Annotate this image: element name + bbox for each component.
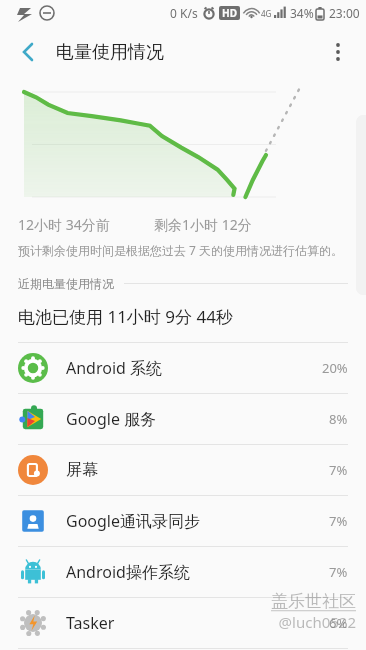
staticText: @luch0522 [278, 612, 356, 632]
staticText: 0 K/s [170, 5, 198, 21]
staticText: 20% [322, 359, 348, 377]
staticText: 电量使用情况 [56, 41, 164, 64]
staticText: 剩余1小时 12分 [154, 215, 252, 234]
staticText: Tasker [66, 612, 115, 634]
button[interactable]: Android 系统 [0, 343, 366, 393]
staticText: 7% [329, 461, 348, 479]
staticText: 4G [261, 8, 272, 19]
button[interactable]: More options [316, 30, 360, 74]
staticText: Google 服务 [66, 408, 157, 430]
staticText: Android 系统 [66, 357, 163, 379]
staticText: 23:00 [329, 5, 360, 21]
staticText: 7% [329, 563, 348, 581]
staticText: 12小时 34分前 [18, 215, 110, 234]
staticText: 预计剩余使用时间是根据您过去 7 天的使用情况进行估算的。 [18, 242, 344, 258]
staticText: 电池已使用 11小时 9分 44秒 [18, 305, 233, 328]
button[interactable]: Back [6, 30, 50, 74]
staticText: 近期电量使用情况 [18, 276, 114, 291]
button[interactable]: 屏幕 [0, 445, 366, 495]
staticText: HD [222, 6, 237, 20]
staticText: 盖乐世社区 [271, 591, 356, 612]
staticText: Google通讯录同步 [66, 510, 201, 532]
button[interactable]: Google 服务 [0, 394, 366, 444]
staticText: 34% [290, 5, 314, 21]
staticText: 屏幕 [66, 460, 98, 480]
button[interactable]: Android操作系统 [0, 547, 366, 597]
staticText: 6% [329, 614, 348, 632]
staticText: 8% [329, 410, 348, 428]
button[interactable]: Tasker [0, 598, 366, 648]
staticText: Android操作系统 [66, 561, 190, 583]
button[interactable]: Google通讯录同步 [0, 496, 366, 546]
staticText: 7% [329, 512, 348, 530]
